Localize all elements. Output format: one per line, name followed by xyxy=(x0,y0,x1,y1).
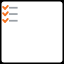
other: Task list xyxy=(0,0,64,64)
button[interactable]: Task list xyxy=(0,0,64,64)
